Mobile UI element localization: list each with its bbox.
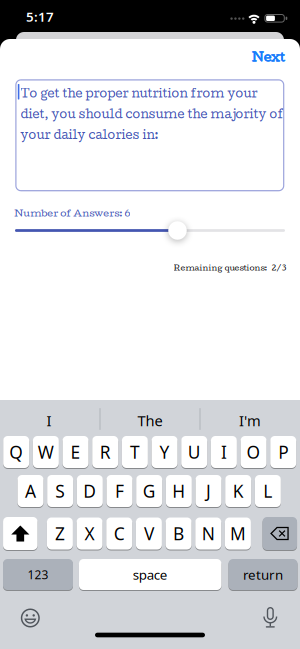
staticText: U bbox=[188, 440, 201, 463]
button[interactable]: Q bbox=[3, 435, 29, 468]
staticText: Remaining questions: 2/3 bbox=[173, 263, 286, 272]
button[interactable]: return bbox=[228, 558, 297, 590]
button[interactable]: J bbox=[195, 474, 221, 507]
button[interactable]: Question text bbox=[15, 79, 284, 191]
staticText: G bbox=[143, 479, 156, 502]
button[interactable]: D bbox=[77, 474, 103, 507]
staticText: K bbox=[233, 479, 244, 502]
staticText: H bbox=[172, 479, 185, 502]
button[interactable]: S bbox=[47, 474, 73, 507]
staticText: C bbox=[114, 522, 125, 545]
button[interactable]: U bbox=[181, 435, 207, 468]
button[interactable]: B bbox=[166, 517, 192, 550]
button[interactable]: Z bbox=[47, 517, 73, 550]
button[interactable]: Number of answers slider bbox=[168, 221, 187, 240]
button[interactable]: Shift bbox=[3, 516, 38, 550]
button[interactable]: V bbox=[136, 517, 162, 550]
staticText: I bbox=[46, 411, 51, 430]
staticText: M bbox=[230, 522, 246, 545]
staticText: To get the proper nutrition from your bbox=[20, 86, 257, 100]
staticText: S bbox=[55, 479, 65, 502]
staticText: E bbox=[70, 440, 80, 463]
button[interactable]: Emoji bbox=[19, 607, 41, 629]
staticText: Next bbox=[252, 48, 285, 64]
staticText: I'm bbox=[239, 411, 261, 430]
staticText: space bbox=[133, 566, 168, 583]
button[interactable]: F bbox=[106, 474, 132, 507]
button[interactable]: Next bbox=[252, 48, 285, 64]
button[interactable]: E bbox=[62, 435, 88, 468]
button[interactable]: Y bbox=[152, 435, 178, 468]
button[interactable]: L bbox=[255, 474, 281, 507]
staticText: Y bbox=[160, 440, 170, 463]
button[interactable]: P bbox=[270, 435, 296, 468]
button[interactable]: Dictate bbox=[260, 607, 280, 628]
button[interactable]: G bbox=[136, 474, 162, 507]
staticText: O bbox=[247, 440, 261, 463]
staticText: V bbox=[144, 522, 154, 545]
button[interactable]: K bbox=[225, 474, 251, 507]
staticText: B bbox=[173, 522, 184, 545]
button[interactable]: W bbox=[33, 435, 59, 468]
staticText: W bbox=[38, 440, 54, 463]
button[interactable]: T bbox=[122, 435, 148, 468]
staticText: J bbox=[206, 479, 211, 502]
button[interactable]: X bbox=[77, 517, 103, 550]
staticText: I bbox=[221, 440, 227, 463]
staticText: D bbox=[83, 479, 96, 502]
staticText: diet, you should consume the majority of bbox=[20, 106, 283, 121]
staticText: X bbox=[85, 522, 95, 545]
staticText: N bbox=[202, 522, 215, 545]
button[interactable]: space bbox=[79, 558, 221, 590]
button[interactable]: A bbox=[17, 474, 43, 507]
staticText: T bbox=[130, 440, 140, 463]
staticText: A bbox=[25, 479, 36, 502]
button[interactable]: I bbox=[46, 411, 51, 430]
staticText: The bbox=[137, 411, 162, 430]
staticText: Q bbox=[9, 440, 23, 463]
staticText: return bbox=[243, 566, 283, 583]
button[interactable]: R bbox=[92, 435, 118, 468]
staticText: R bbox=[100, 440, 111, 463]
staticText: Next bbox=[252, 48, 285, 64]
button[interactable]: N bbox=[195, 517, 221, 550]
button[interactable]: O bbox=[241, 435, 267, 468]
button[interactable]: I bbox=[211, 435, 237, 468]
button[interactable]: 123 bbox=[3, 558, 73, 590]
button[interactable]: I'm bbox=[239, 411, 261, 430]
staticText: Number of Answers: 6 bbox=[14, 207, 130, 219]
staticText: P bbox=[278, 440, 288, 463]
button[interactable]: Delete bbox=[263, 516, 297, 550]
button[interactable]: H bbox=[166, 474, 192, 507]
staticText: 123 bbox=[27, 566, 48, 582]
staticText: your daily calories in: bbox=[20, 127, 158, 142]
staticText: L bbox=[263, 479, 272, 502]
staticText: Z bbox=[55, 522, 65, 545]
staticText: Next bbox=[252, 49, 285, 64]
button[interactable]: C bbox=[106, 517, 132, 550]
button[interactable]: M bbox=[225, 517, 251, 550]
button[interactable]: The bbox=[137, 411, 162, 430]
staticText: 5:17 bbox=[26, 8, 54, 25]
staticText: F bbox=[115, 479, 124, 502]
